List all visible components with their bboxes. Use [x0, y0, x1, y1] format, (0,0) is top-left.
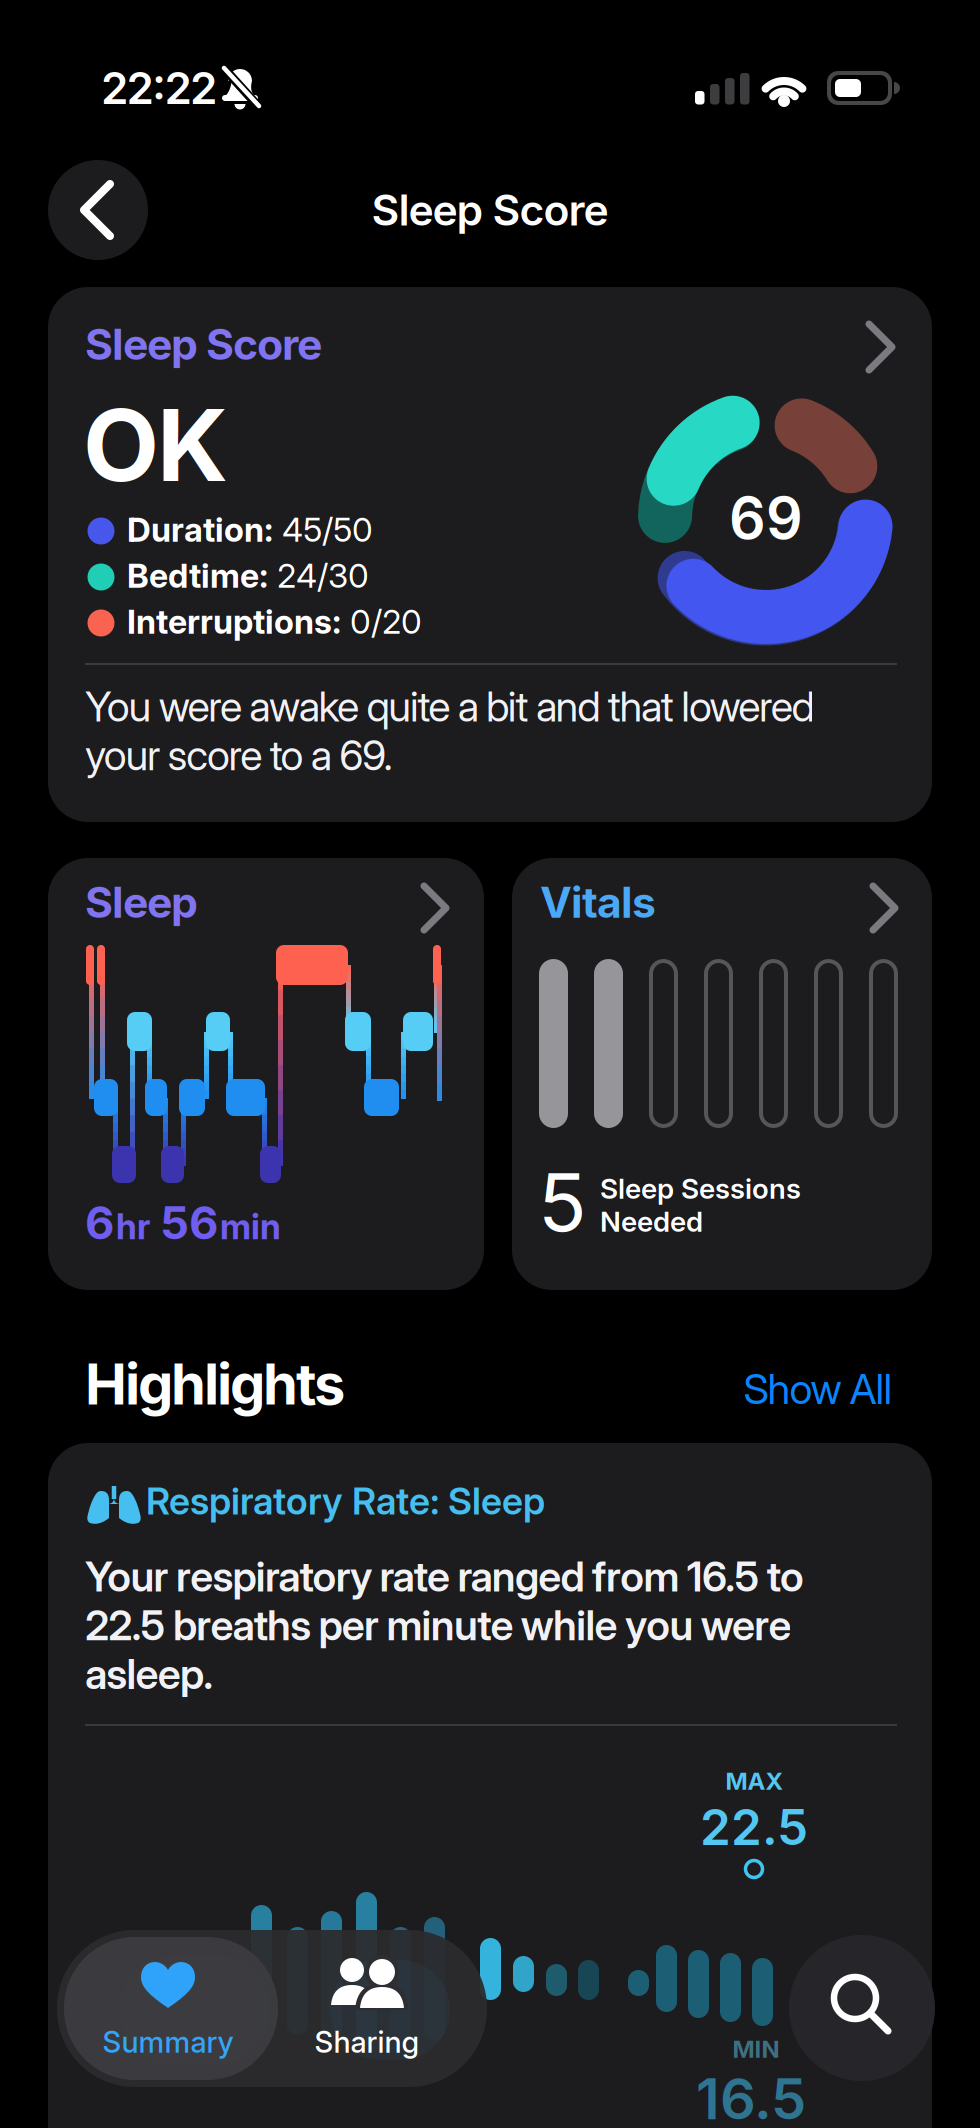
button[interactable]: Search: [789, 1935, 935, 2081]
staticText: 6: [85, 1196, 114, 1249]
staticText: Duration:: [127, 510, 273, 549]
staticText: 45/50: [273, 510, 373, 549]
staticText: Your respiratory rate ranged from 16.5 t…: [85, 1552, 804, 1698]
staticText: Interruptions:: [127, 602, 341, 641]
staticText: You were awake quite a bit and that lowe…: [85, 682, 814, 779]
staticText: Sleep: [85, 877, 198, 927]
staticText: Bedtime:: [127, 556, 268, 595]
staticText: MIN: [732, 2035, 779, 2063]
staticText: 69: [729, 484, 803, 552]
staticText: 24/30: [268, 556, 369, 595]
staticText: Sleep Score: [371, 185, 608, 235]
staticText: 5: [538, 1155, 587, 1249]
button[interactable]: Back: [48, 160, 148, 260]
staticText: hr: [116, 1206, 158, 1247]
staticText: 56: [160, 1196, 218, 1249]
button[interactable]: Show All: [743, 1365, 892, 1413]
staticText: Sleep Sessions Needed: [600, 1172, 801, 1238]
button[interactable]: Summary: [64, 1937, 278, 2080]
staticText: 22:22: [101, 62, 217, 114]
staticText: 16.5: [696, 2066, 806, 2128]
staticText: 0/20: [341, 602, 422, 641]
staticText: OK: [83, 387, 228, 503]
staticText: 22.5: [700, 1798, 808, 1856]
button[interactable]: Sharing: [270, 1933, 470, 2083]
button[interactable]: Vitals: [512, 858, 932, 1290]
staticText: Respiratory Rate: Sleep: [146, 1479, 545, 1523]
staticText: Vitals: [540, 877, 656, 927]
staticText: Sharing: [314, 2025, 419, 2059]
staticText: MAX: [725, 1767, 782, 1795]
staticText: Summary: [102, 2025, 233, 2059]
staticText: Sleep Score: [85, 319, 322, 369]
button[interactable]: Sleep: [48, 858, 484, 1290]
button[interactable]: Sleep Score: [48, 287, 932, 822]
button[interactable]: Respiratory Rate: Sleep highlight: [48, 1443, 932, 2128]
staticText: Show All: [743, 1365, 892, 1413]
staticText: Highlights: [85, 1351, 345, 1417]
staticText: min: [220, 1206, 281, 1247]
